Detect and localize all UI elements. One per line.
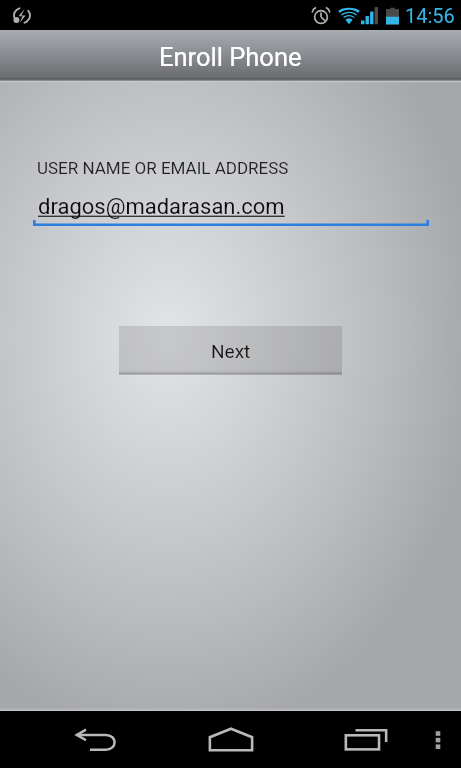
button[interactable]: Recent apps [331, 711, 401, 768]
button[interactable]: Next [119, 326, 342, 375]
staticText: Enroll Phone [159, 42, 302, 72]
button[interactable]: Home [195, 711, 266, 768]
button[interactable]: dragos@madarasan.com [33, 194, 429, 226]
staticText: Next [211, 340, 251, 362]
staticText: 14:56 [405, 4, 455, 27]
button[interactable]: More options [417, 711, 458, 768]
button[interactable]: Back [61, 711, 131, 768]
staticText: USER NAME OR EMAIL ADDRESS [37, 158, 289, 178]
staticText: dragos@madarasan.com [38, 194, 285, 220]
